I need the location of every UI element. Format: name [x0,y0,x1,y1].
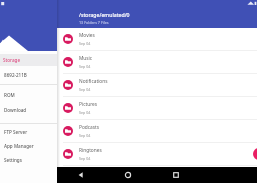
staticText: Movies [79,32,95,39]
button[interactable]: Podcasts [0,120,257,143]
staticText: 13 Folders 7 Files [79,20,109,25]
button[interactable]: 8692-211B [0,66,57,84]
button[interactable]: ROM [0,87,57,103]
staticText: Settings [4,157,22,163]
button[interactable]: Ringtones [0,143,257,166]
button[interactable]: Movies [0,28,257,51]
staticText: Notifications [79,78,108,85]
staticText: FTP Server [4,129,28,135]
staticText: /storage/emulated/0 [79,11,130,18]
button[interactable]: Settings [0,153,57,167]
button[interactable]: Download [0,103,57,117]
staticText: Pictures [79,101,98,108]
staticText: Music [79,55,93,62]
staticText: Sep 04 [79,87,91,92]
staticText: ROM [4,92,15,98]
staticText: App Manager [4,143,34,149]
button[interactable]: Music [0,51,257,74]
staticText: Sep 04 [79,156,91,161]
staticText: 8692-211B [4,72,27,78]
staticText: Podcasts [79,124,100,131]
staticText: Storage [3,57,21,63]
staticText: Sep 04 [79,41,91,46]
staticText: Sep 04 [79,110,91,115]
button[interactable]: Notifications [0,74,257,97]
button[interactable]: Pictures [0,97,257,120]
button[interactable]: App Manager [0,139,57,153]
button[interactable]: FTP Server [0,125,57,139]
staticText: Sep 04 [79,64,91,69]
staticText: Ringtones [79,147,102,154]
staticText: Sep 04 [79,133,91,138]
staticText: Download [4,107,27,113]
button[interactable]: Add [253,148,257,160]
